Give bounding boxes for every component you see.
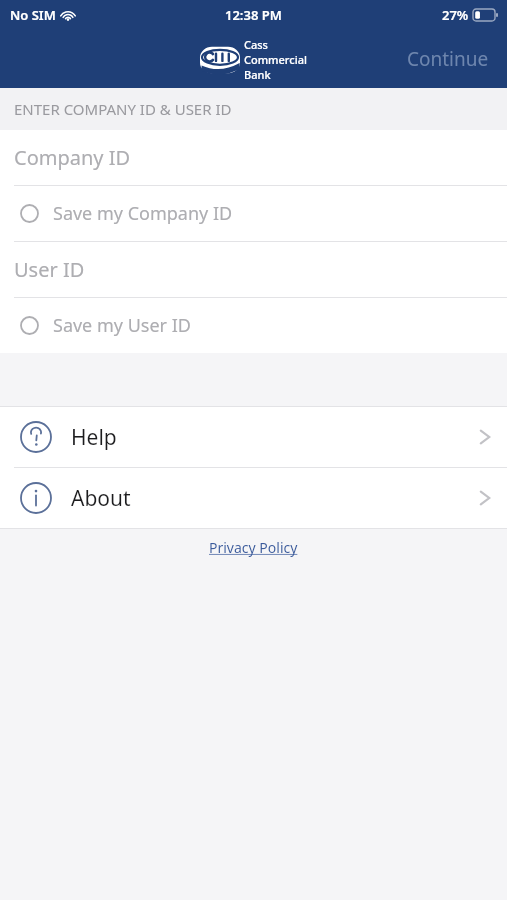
staticText: User ID <box>14 256 85 283</box>
staticText: ENTER COMPANY ID & USER ID <box>14 99 232 119</box>
button[interactable]: Save my User ID <box>0 298 507 353</box>
staticText: Continue <box>407 46 489 72</box>
other: About <box>20 482 52 514</box>
other: Help <box>20 421 52 453</box>
staticText: Bank <box>244 67 271 82</box>
button[interactable]: Company ID <box>0 130 507 185</box>
staticText: Help <box>71 423 117 452</box>
staticText: 27% <box>442 6 469 24</box>
staticText: 12:38 PM <box>225 6 282 24</box>
button[interactable]: About <box>0 468 507 528</box>
button[interactable]: Save my Company ID <box>0 186 507 241</box>
staticText: Privacy Policy <box>209 538 298 557</box>
staticText: About <box>71 484 131 513</box>
staticText: Save my User ID <box>53 313 191 338</box>
button[interactable]: Help <box>0 407 507 467</box>
button[interactable]: Continue <box>389 36 507 82</box>
staticText: Save my Company ID <box>53 201 233 226</box>
staticText: No SIM <box>10 6 56 24</box>
button[interactable]: Privacy Policy <box>201 534 306 561</box>
staticText: Commercial <box>244 52 307 67</box>
button[interactable]: User ID <box>0 242 507 297</box>
staticText: Company ID <box>14 144 131 171</box>
staticText: Cass <box>244 37 268 52</box>
